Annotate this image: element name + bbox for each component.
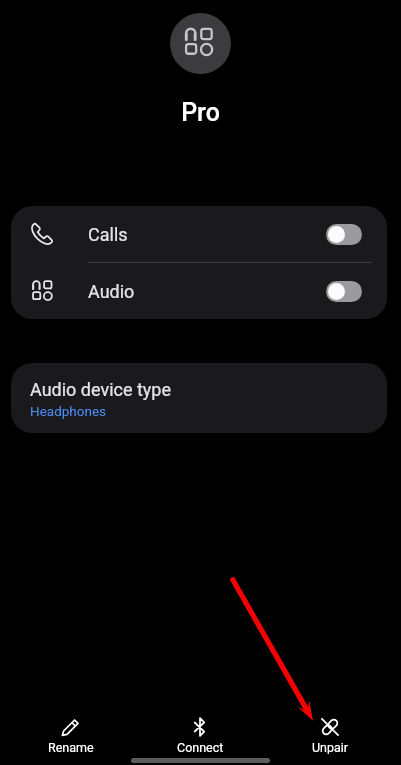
- button[interactable]: Toggle: [326, 224, 362, 245]
- staticText: Calls: [88, 224, 326, 245]
- staticText: Audio device type: [30, 379, 171, 400]
- button[interactable]: Unpair: [265, 702, 395, 754]
- button[interactable]: Audio: [11, 263, 387, 319]
- staticText: Connect: [177, 740, 224, 754]
- staticText: Headphones: [30, 403, 107, 419]
- button[interactable]: Toggle: [326, 281, 362, 302]
- staticText: Pro: [0, 98, 401, 127]
- button[interactable]: Calls: [11, 206, 387, 262]
- button[interactable]: Audio device type: [11, 363, 387, 433]
- button[interactable]: Connect: [135, 702, 265, 754]
- staticText: Unpair: [312, 740, 349, 754]
- staticText: Rename: [48, 740, 94, 754]
- staticText: Audio: [88, 281, 326, 302]
- button[interactable]: Rename: [6, 702, 135, 754]
